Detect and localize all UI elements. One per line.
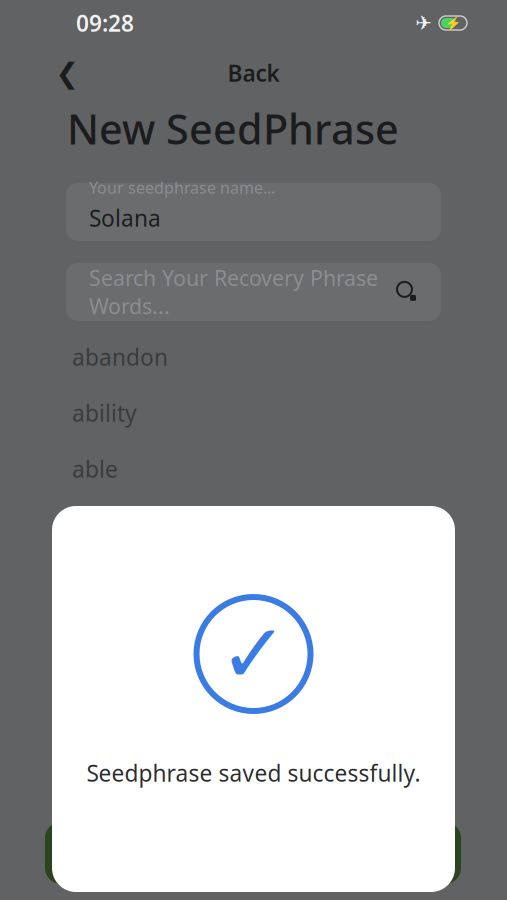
staticText: 09:28 <box>76 8 134 38</box>
button[interactable]: Back <box>45 51 89 95</box>
staticText: Solana <box>89 203 161 233</box>
staticText: New SeedPhrase <box>67 101 399 156</box>
staticText: ⚡ <box>444 15 461 31</box>
staticText: Search Your Recovery Phrase Words... <box>89 264 378 320</box>
staticText: ❮ <box>55 57 78 89</box>
button[interactable]: abandon <box>72 329 442 385</box>
button[interactable]: Solana <box>66 177 441 241</box>
button[interactable]: able <box>72 441 442 497</box>
staticText: able <box>72 454 118 484</box>
staticText: ability <box>72 398 137 428</box>
staticText: Back <box>227 58 279 88</box>
staticText: Your seedphrase name... <box>89 177 275 198</box>
staticText: ✓ <box>219 607 288 701</box>
staticText: Seedphrase saved successfully. <box>86 758 420 788</box>
button[interactable]: about <box>72 497 442 553</box>
button[interactable]: ability <box>72 385 442 441</box>
button[interactable]: Search Your Recovery Phrase Words... <box>66 263 441 321</box>
staticText: abandon <box>72 342 168 372</box>
staticText: ✈ <box>415 12 432 34</box>
button[interactable] <box>45 822 461 884</box>
